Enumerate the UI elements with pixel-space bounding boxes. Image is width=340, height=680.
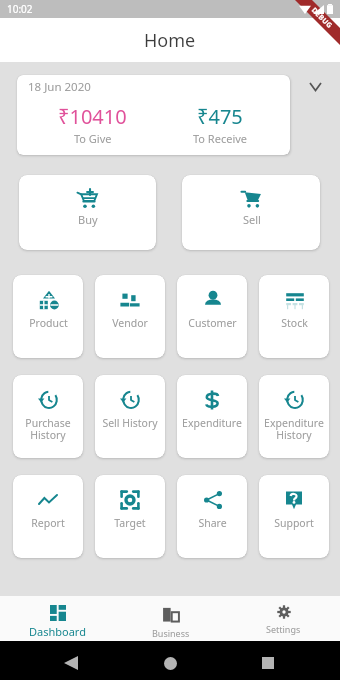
staticText: Expenditure History (264, 416, 324, 442)
button[interactable]: Settings (227, 596, 340, 641)
button[interactable]: Vendor (95, 275, 165, 358)
staticText: 10:02 (7, 2, 33, 16)
staticText: Settings (266, 623, 301, 635)
staticText: Sell (243, 212, 261, 227)
staticText: Business (152, 627, 190, 639)
button[interactable]: Stock (259, 275, 329, 358)
button[interactable]: Home (155, 648, 185, 678)
staticText: Home (144, 28, 196, 53)
staticText: Support (274, 516, 314, 530)
button[interactable]: 18 Jun 2020 (17, 75, 290, 155)
button[interactable]: Expenditure (177, 375, 247, 458)
button[interactable]: Expenditure History (259, 375, 329, 458)
staticText: Vendor (112, 316, 148, 330)
staticText: ₹475 (197, 103, 243, 130)
staticText: To Receive (193, 131, 248, 146)
staticText: Report (31, 516, 65, 530)
staticText: Dashboard (29, 624, 86, 639)
button[interactable]: Report (13, 475, 83, 558)
button[interactable]: Purchase History (13, 375, 83, 458)
button[interactable]: Recents (253, 648, 283, 678)
staticText: Expenditure (182, 416, 242, 430)
staticText: Buy (78, 212, 98, 227)
button[interactable]: Dashboard (0, 596, 114, 641)
button[interactable]: Support (259, 475, 329, 558)
staticText: 18 Jun 2020 (28, 79, 91, 95)
staticText: Target (114, 516, 146, 530)
button[interactable]: Buy (19, 175, 156, 250)
staticText: Stock (281, 316, 308, 330)
staticText: Product (29, 316, 68, 330)
button[interactable]: Business (114, 596, 227, 641)
staticText: Customer (188, 316, 237, 330)
button[interactable]: Sell (182, 175, 320, 250)
button[interactable]: Target (95, 475, 165, 558)
button[interactable]: Back (56, 648, 86, 678)
staticText: To Give (74, 131, 112, 146)
button[interactable]: Sell History (95, 375, 165, 458)
button[interactable]: Expand (290, 75, 340, 97)
button[interactable]: Product (13, 275, 83, 358)
button[interactable]: Customer (177, 275, 247, 358)
staticText: Sell History (102, 416, 158, 430)
staticText: ₹10410 (58, 103, 127, 130)
button[interactable]: Share (177, 475, 247, 558)
staticText: Purchase History (25, 416, 71, 442)
staticText: DEBUG (309, 6, 335, 31)
staticText: Share (198, 516, 227, 530)
